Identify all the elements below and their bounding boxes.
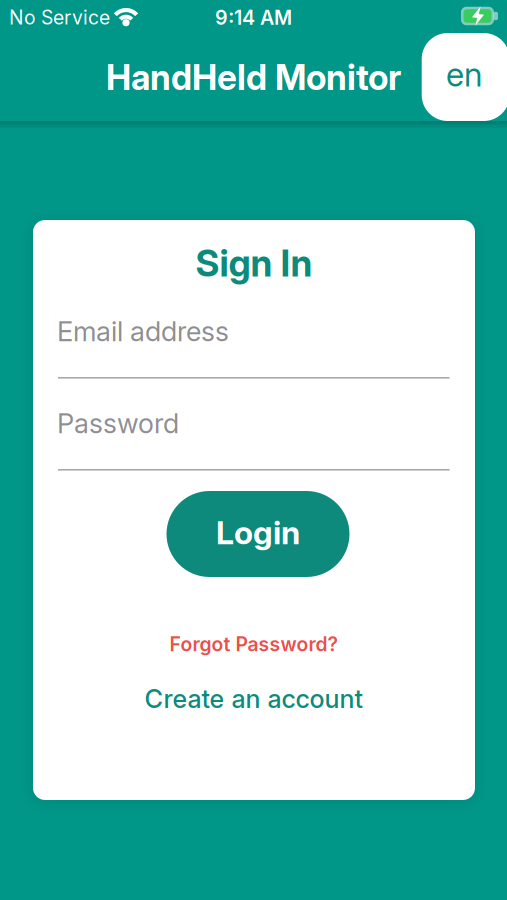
staticText: en bbox=[446, 55, 482, 94]
staticText: Password bbox=[57, 407, 179, 440]
staticText: Create an account bbox=[144, 683, 363, 714]
button[interactable]: Create an account bbox=[33, 683, 475, 714]
staticText: Sign In bbox=[195, 241, 312, 285]
button[interactable]: Language: English bbox=[422, 33, 507, 121]
staticText: Forgot Password? bbox=[169, 632, 338, 656]
staticText: Login bbox=[216, 513, 300, 552]
button[interactable]: Login bbox=[166, 491, 349, 577]
staticText: HandHeld Monitor bbox=[106, 56, 401, 98]
staticText: No Service bbox=[9, 6, 110, 29]
staticText: 9:14 AM bbox=[215, 6, 292, 29]
staticText: Email address bbox=[57, 315, 229, 348]
button[interactable]: Forgot Password? bbox=[33, 632, 475, 656]
